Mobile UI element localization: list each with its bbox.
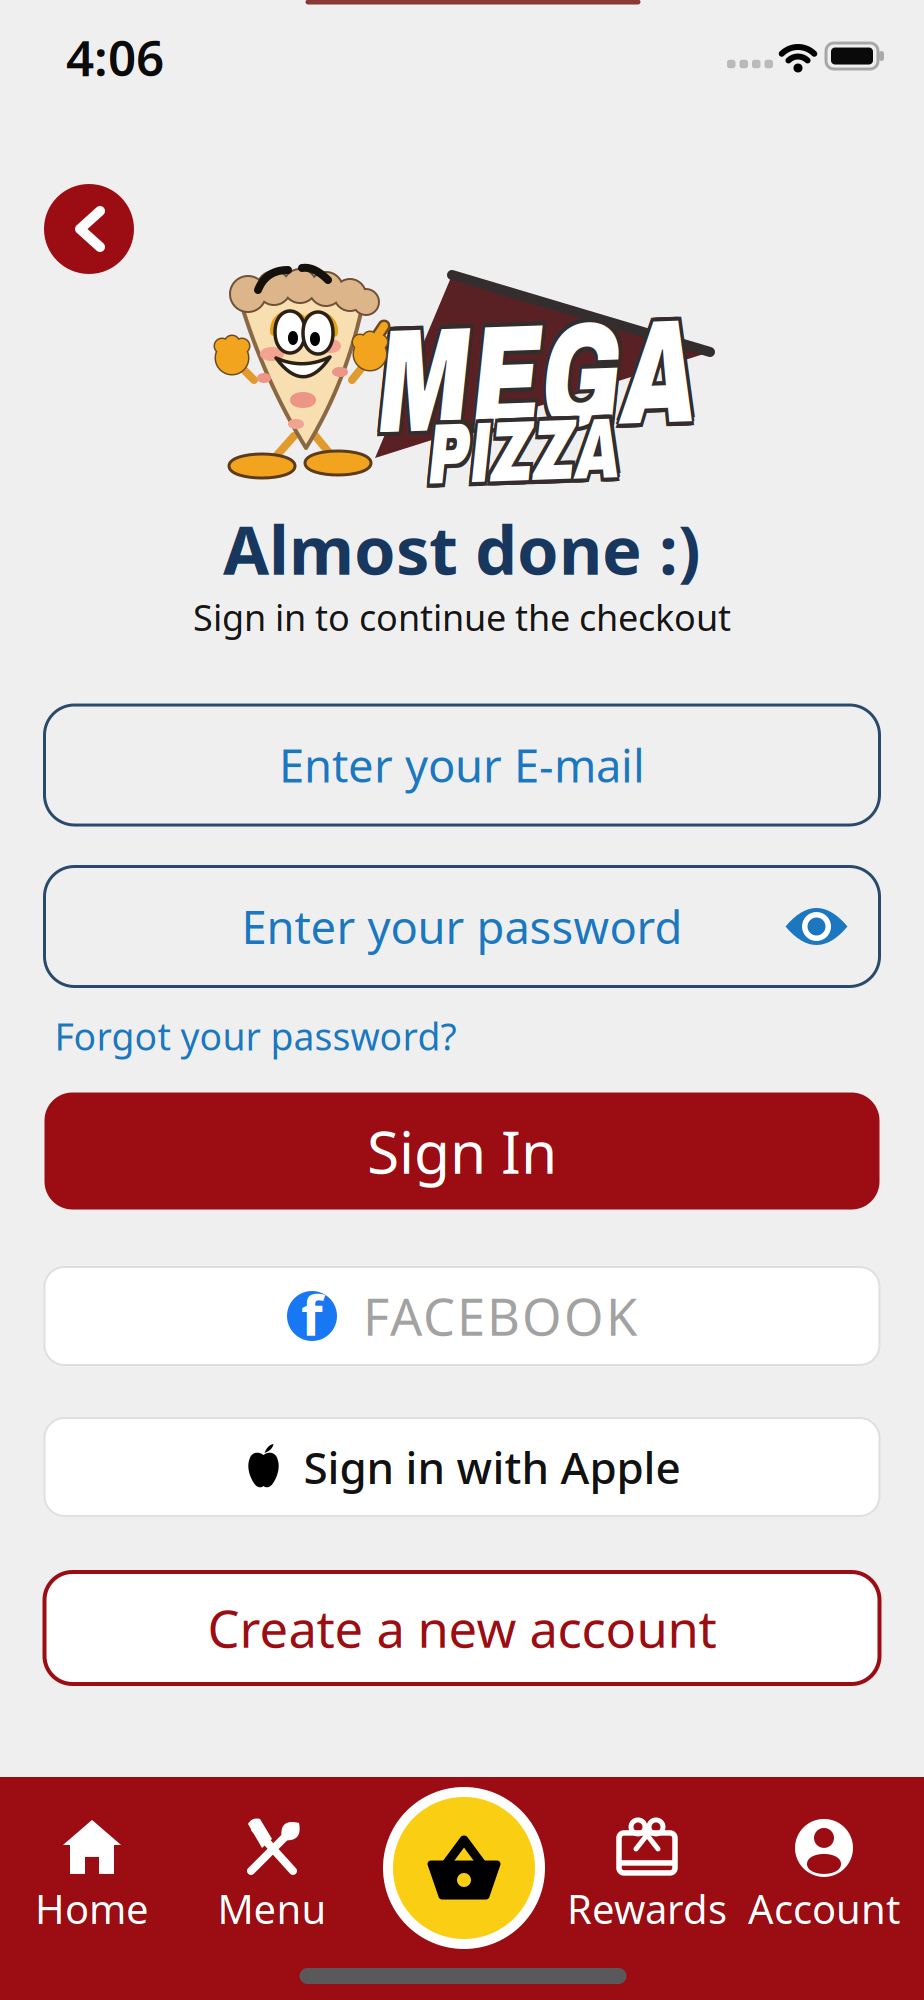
button[interactable]: Menu [187, 1822, 357, 1932]
staticText: 4:06 [66, 24, 164, 90]
staticText: PIZZA [373, 406, 656, 498]
button[interactable]: f [44, 1267, 879, 1365]
staticText: MEGA [284, 294, 769, 454]
staticText: MEGA [288, 294, 773, 454]
staticText: PIZZA [373, 410, 656, 502]
staticText: Enter your password [241, 896, 682, 957]
staticText: MEGA [284, 302, 769, 462]
button[interactable]: Cart [383, 1787, 545, 1949]
button[interactable]: Sign In [44, 1092, 879, 1209]
staticText: PIZZA [377, 410, 660, 502]
button[interactable]: Enter your E-mail [44, 705, 879, 825]
staticText: Menu [217, 1882, 326, 1935]
staticText: f [301, 1277, 323, 1351]
staticText: MEGA [284, 298, 769, 458]
button[interactable]: Create a new account [44, 1572, 879, 1684]
button[interactable]: Rewards [562, 1822, 732, 1932]
button[interactable]: Forgot your password? [44, 1011, 879, 1061]
staticText: Account [748, 1882, 900, 1935]
staticText: MEGA [288, 302, 773, 462]
staticText: PIZZA [377, 406, 660, 498]
staticText: MEGA [284, 298, 769, 458]
staticText: MEGA [280, 298, 765, 458]
button[interactable]: Back [44, 184, 134, 274]
staticText: MEGA [280, 294, 765, 454]
button[interactable]: Account [739, 1822, 909, 1932]
staticText: MEGA [288, 298, 773, 458]
staticText: FACEBOOK [363, 1282, 637, 1350]
button[interactable]: Home [7, 1822, 177, 1932]
staticText: Rewards [567, 1882, 727, 1935]
staticText: PIZZA [373, 402, 656, 494]
staticText: Forgot your password? [54, 1011, 456, 1061]
staticText: Almost done :) [223, 505, 701, 593]
staticText: Sign in with Apple [303, 1438, 680, 1496]
button[interactable]: Enter your password [44, 866, 879, 986]
staticText: Sign in to continue the checkout [193, 593, 731, 641]
staticText: Enter your E-mail [279, 735, 645, 795]
staticText: PIZZA [377, 406, 660, 498]
staticText: Create a new account [207, 1594, 716, 1662]
staticText: Home [35, 1882, 149, 1935]
button[interactable]: Sign in with Apple [44, 1418, 879, 1516]
staticText: PIZZA [381, 402, 664, 494]
staticText: MEGA [280, 302, 765, 462]
staticText: PIZZA [377, 402, 660, 494]
staticText: PIZZA [381, 406, 664, 498]
staticText: PIZZA [381, 410, 664, 502]
staticText: Sign In [367, 1112, 557, 1190]
